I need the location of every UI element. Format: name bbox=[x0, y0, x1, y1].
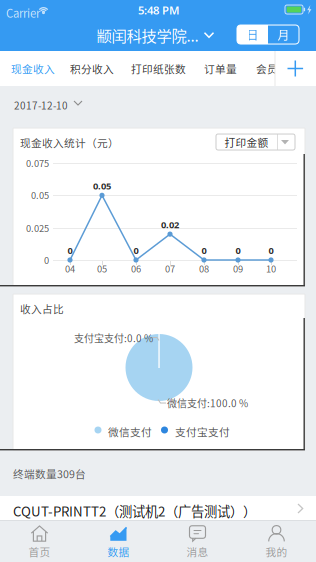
staticText: 会员 bbox=[256, 61, 278, 76]
staticText: 现金收入 bbox=[11, 61, 55, 76]
staticText: 0.075 bbox=[26, 156, 49, 170]
button[interactable]: 消息 bbox=[158, 521, 237, 562]
staticText: 微信支付 bbox=[108, 424, 152, 439]
staticText: 积分收入 bbox=[70, 61, 114, 76]
button[interactable]: 会员 bbox=[256, 51, 278, 86]
button[interactable]: 首页 bbox=[0, 521, 79, 562]
button[interactable]: 现金收入 bbox=[11, 51, 55, 86]
staticText: 0.05 bbox=[31, 188, 49, 202]
staticText: 0.05 bbox=[93, 179, 111, 192]
staticText: 07 bbox=[165, 262, 175, 275]
button[interactable]: 打印纸张数 bbox=[131, 51, 186, 86]
staticText: 0 bbox=[133, 244, 138, 257]
button[interactable]: 2017-12-10 bbox=[0, 86, 140, 120]
staticText: 08 bbox=[199, 262, 209, 275]
button[interactable]: 添加统计项 bbox=[275, 51, 316, 86]
staticText: 颛闰科技学院... bbox=[96, 24, 198, 46]
staticText: 终端数量309台 bbox=[13, 466, 86, 481]
staticText: Carrier bbox=[6, 4, 40, 21]
button[interactable]: 打印金额 bbox=[216, 134, 295, 150]
button[interactable]: 积分收入 bbox=[70, 51, 114, 86]
button[interactable]: 日 bbox=[237, 25, 268, 44]
staticText: 0.025 bbox=[26, 221, 49, 235]
staticText: 收入占比 bbox=[20, 301, 64, 316]
staticText: CQUT-PRINTT2（测试机2（广告测试）） bbox=[13, 501, 256, 520]
button[interactable]: CQUT-PRINTT2（测试机2（广告测试）） bbox=[0, 496, 316, 521]
staticText: 打印金额 bbox=[224, 134, 268, 150]
staticText: 0 bbox=[67, 244, 72, 257]
staticText: 首页 bbox=[28, 544, 50, 559]
staticText: 0.02 bbox=[161, 218, 179, 231]
staticText: 10 bbox=[266, 262, 276, 275]
staticText: 0 bbox=[268, 244, 273, 257]
staticText: 5:48 PM bbox=[138, 2, 180, 18]
button[interactable]: 订单量 bbox=[204, 51, 237, 86]
staticText: 我的 bbox=[265, 544, 287, 559]
staticText: 06 bbox=[131, 262, 141, 275]
staticText: 0 bbox=[235, 244, 240, 257]
staticText: 0 bbox=[44, 253, 49, 267]
staticText: 支付宝支付:0.0 % bbox=[74, 331, 153, 345]
staticText: 消息 bbox=[186, 544, 208, 559]
staticText: 04 bbox=[65, 262, 75, 275]
button[interactable]: 我的 bbox=[237, 521, 316, 562]
staticText: 月 bbox=[277, 26, 289, 43]
staticText: 微信支付:100.0 % bbox=[167, 396, 248, 410]
staticText: 09 bbox=[233, 262, 243, 275]
staticText: 05 bbox=[97, 262, 107, 275]
staticText: 数据 bbox=[107, 544, 129, 559]
staticText: 打印纸张数 bbox=[131, 61, 186, 76]
button[interactable]: 月 bbox=[268, 25, 299, 44]
staticText: 日 bbox=[246, 26, 258, 43]
button[interactable]: 数据 bbox=[79, 521, 158, 562]
staticText: 支付宝支付 bbox=[175, 424, 230, 439]
staticText: 订单量 bbox=[204, 61, 237, 76]
staticText: 2017-12-10 bbox=[14, 98, 68, 112]
staticText: 0 bbox=[201, 244, 206, 257]
staticText: 现金收入统计（元） bbox=[20, 135, 119, 150]
button[interactable]: 颛闰科技学院... bbox=[94, 19, 216, 51]
